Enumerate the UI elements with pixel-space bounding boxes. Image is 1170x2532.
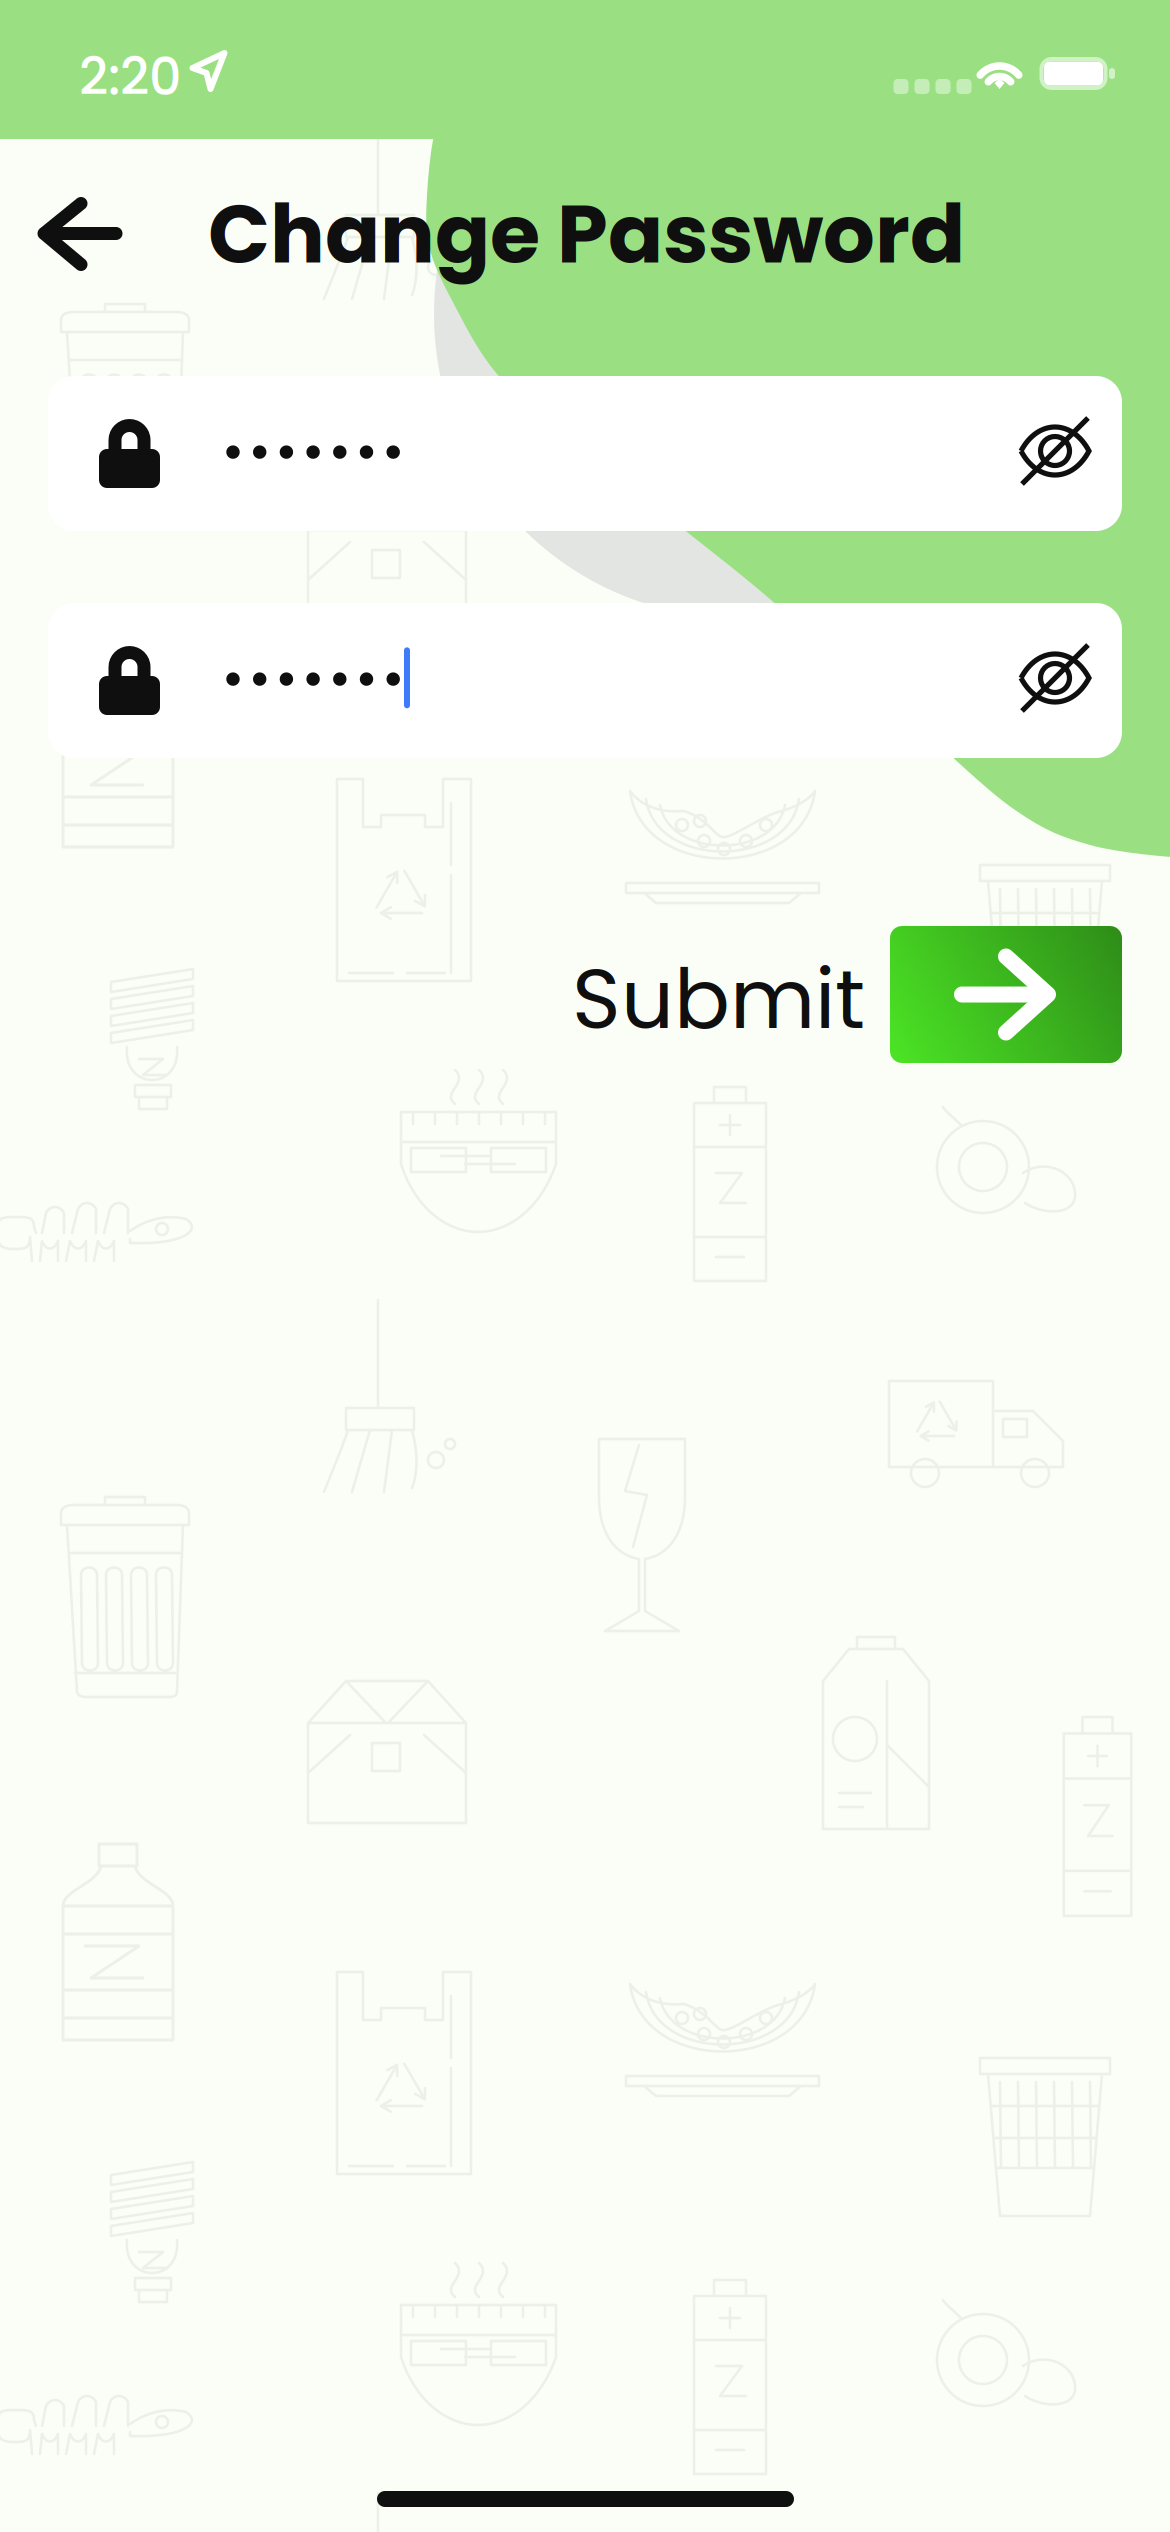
staticText: 2:20 [79,41,181,112]
staticText: Change Password [208,177,965,291]
staticText: Submit [572,941,865,1057]
button[interactable]: Submit [0,0,1170,2532]
button[interactable]: Back [0,0,1170,2532]
